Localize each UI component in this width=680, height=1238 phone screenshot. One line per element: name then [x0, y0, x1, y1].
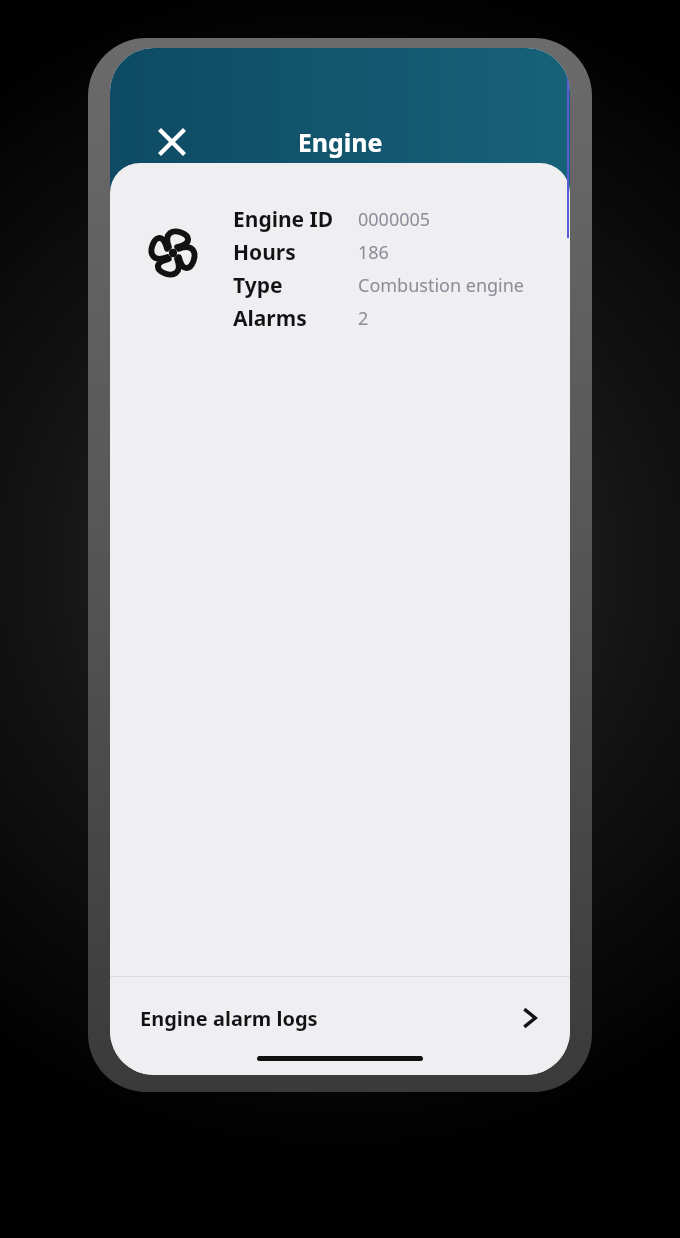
staticText: 186 — [358, 240, 389, 265]
staticText: Engine alarm logs — [140, 1005, 318, 1032]
staticText: Type — [233, 271, 283, 300]
staticText: Engine ID — [233, 205, 334, 234]
staticText: Combustion engine — [358, 273, 525, 298]
staticText: Engine — [110, 125, 570, 159]
staticText: 0000005 — [358, 207, 431, 232]
staticText: 2 — [358, 306, 369, 331]
staticText: Hours — [233, 238, 296, 267]
staticText: Alarms — [233, 304, 307, 333]
button[interactable]: Engine alarm logs — [110, 977, 570, 1059]
button[interactable]: Close — [146, 116, 198, 168]
